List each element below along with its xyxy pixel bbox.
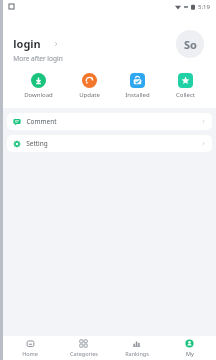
staticText: Categories bbox=[70, 350, 98, 357]
staticText: My bbox=[186, 350, 194, 357]
button[interactable]: Collect bbox=[172, 72, 199, 100]
button[interactable]: Profile avatar bbox=[176, 30, 204, 58]
staticText: login bbox=[13, 36, 41, 51]
button[interactable]: Download bbox=[20, 72, 57, 100]
staticText: So bbox=[184, 37, 197, 52]
button[interactable]: My bbox=[163, 336, 216, 360]
button[interactable]: Installed bbox=[121, 72, 154, 100]
button[interactable]: Update bbox=[75, 72, 104, 100]
staticText: 5:19 bbox=[198, 3, 210, 11]
staticText: More after login bbox=[13, 54, 63, 63]
button[interactable]: Comment bbox=[7, 113, 212, 130]
button[interactable]: Setting bbox=[7, 135, 212, 152]
staticText: Setting bbox=[26, 139, 48, 148]
staticText: Collect bbox=[176, 91, 195, 99]
staticText: Home bbox=[22, 350, 38, 357]
button[interactable]: Home bbox=[3, 336, 57, 360]
staticText: Comment bbox=[26, 117, 57, 126]
staticText: Installed bbox=[125, 91, 150, 99]
staticText: Update bbox=[79, 91, 100, 99]
button[interactable]: Rankings bbox=[110, 336, 163, 360]
button[interactable]: Categories bbox=[57, 336, 110, 360]
staticText: Download bbox=[24, 91, 53, 99]
staticText: Rankings bbox=[125, 350, 149, 357]
button[interactable]: login bbox=[13, 36, 63, 63]
